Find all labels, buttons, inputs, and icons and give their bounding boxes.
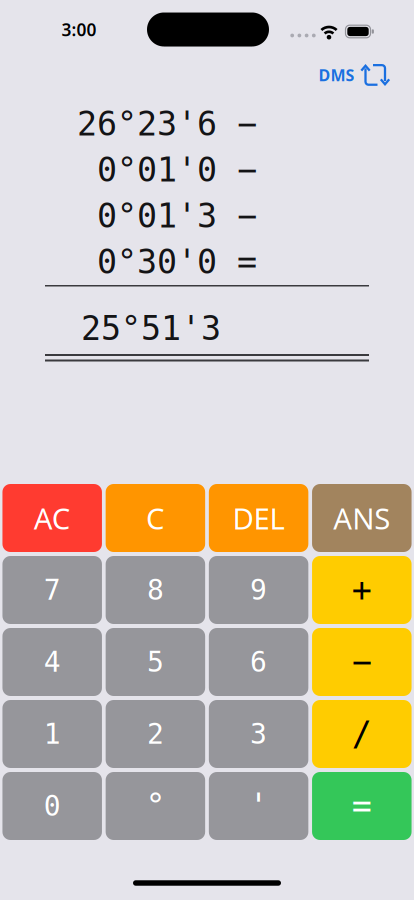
staticText: 8 [147,574,164,606]
staticText: C [146,498,165,537]
button[interactable]: 9 [209,556,308,624]
staticText: + [352,571,372,609]
staticText: 26°23'6 − [77,105,257,143]
button[interactable]: − [312,628,412,696]
staticText: DMS [318,64,354,86]
staticText: 9 [250,574,267,606]
button[interactable]: + [312,556,412,624]
button[interactable]: 2 [106,700,205,768]
button[interactable]: ' [209,772,308,840]
button[interactable]: DEL [209,484,308,552]
staticText: − [352,643,372,681]
button[interactable]: / [312,700,412,768]
staticText: 0 [44,790,61,822]
button[interactable]: AC [2,484,102,552]
staticText: 5 [147,646,164,678]
staticText: = [352,787,372,825]
staticText: 1 [44,718,61,750]
button[interactable]: 6 [209,628,308,696]
button[interactable]: 4 [2,628,102,696]
staticText: 4 [44,646,61,678]
button[interactable]: 0 [2,772,102,840]
staticText: AC [34,498,71,537]
button[interactable]: 1 [2,700,102,768]
button[interactable]: Convert DMS [318,63,389,87]
staticText: 7 [44,574,61,606]
staticText: ANS [333,498,390,537]
staticText: 25°51'3 [81,310,221,347]
button[interactable]: 3 [209,700,308,768]
staticText: / [352,715,372,753]
button[interactable]: C [106,484,205,552]
staticText: 6 [250,646,267,678]
button[interactable]: 5 [106,628,205,696]
staticText: 2 [147,718,164,750]
staticText: 0°01'3 − [97,197,257,235]
staticText: 0°01'0 − [97,151,257,189]
button[interactable]: = [312,772,412,840]
staticText: ° [145,787,165,825]
staticText: 3 [250,718,267,750]
button[interactable]: 8 [106,556,205,624]
staticText: 3:00 [61,18,96,41]
staticText: 0°30'0 = [97,243,257,281]
button[interactable]: 7 [2,556,102,624]
staticText: ' [249,787,269,825]
button[interactable]: ANS [312,484,412,552]
staticText: DEL [233,498,285,537]
button[interactable]: ° [106,772,205,840]
